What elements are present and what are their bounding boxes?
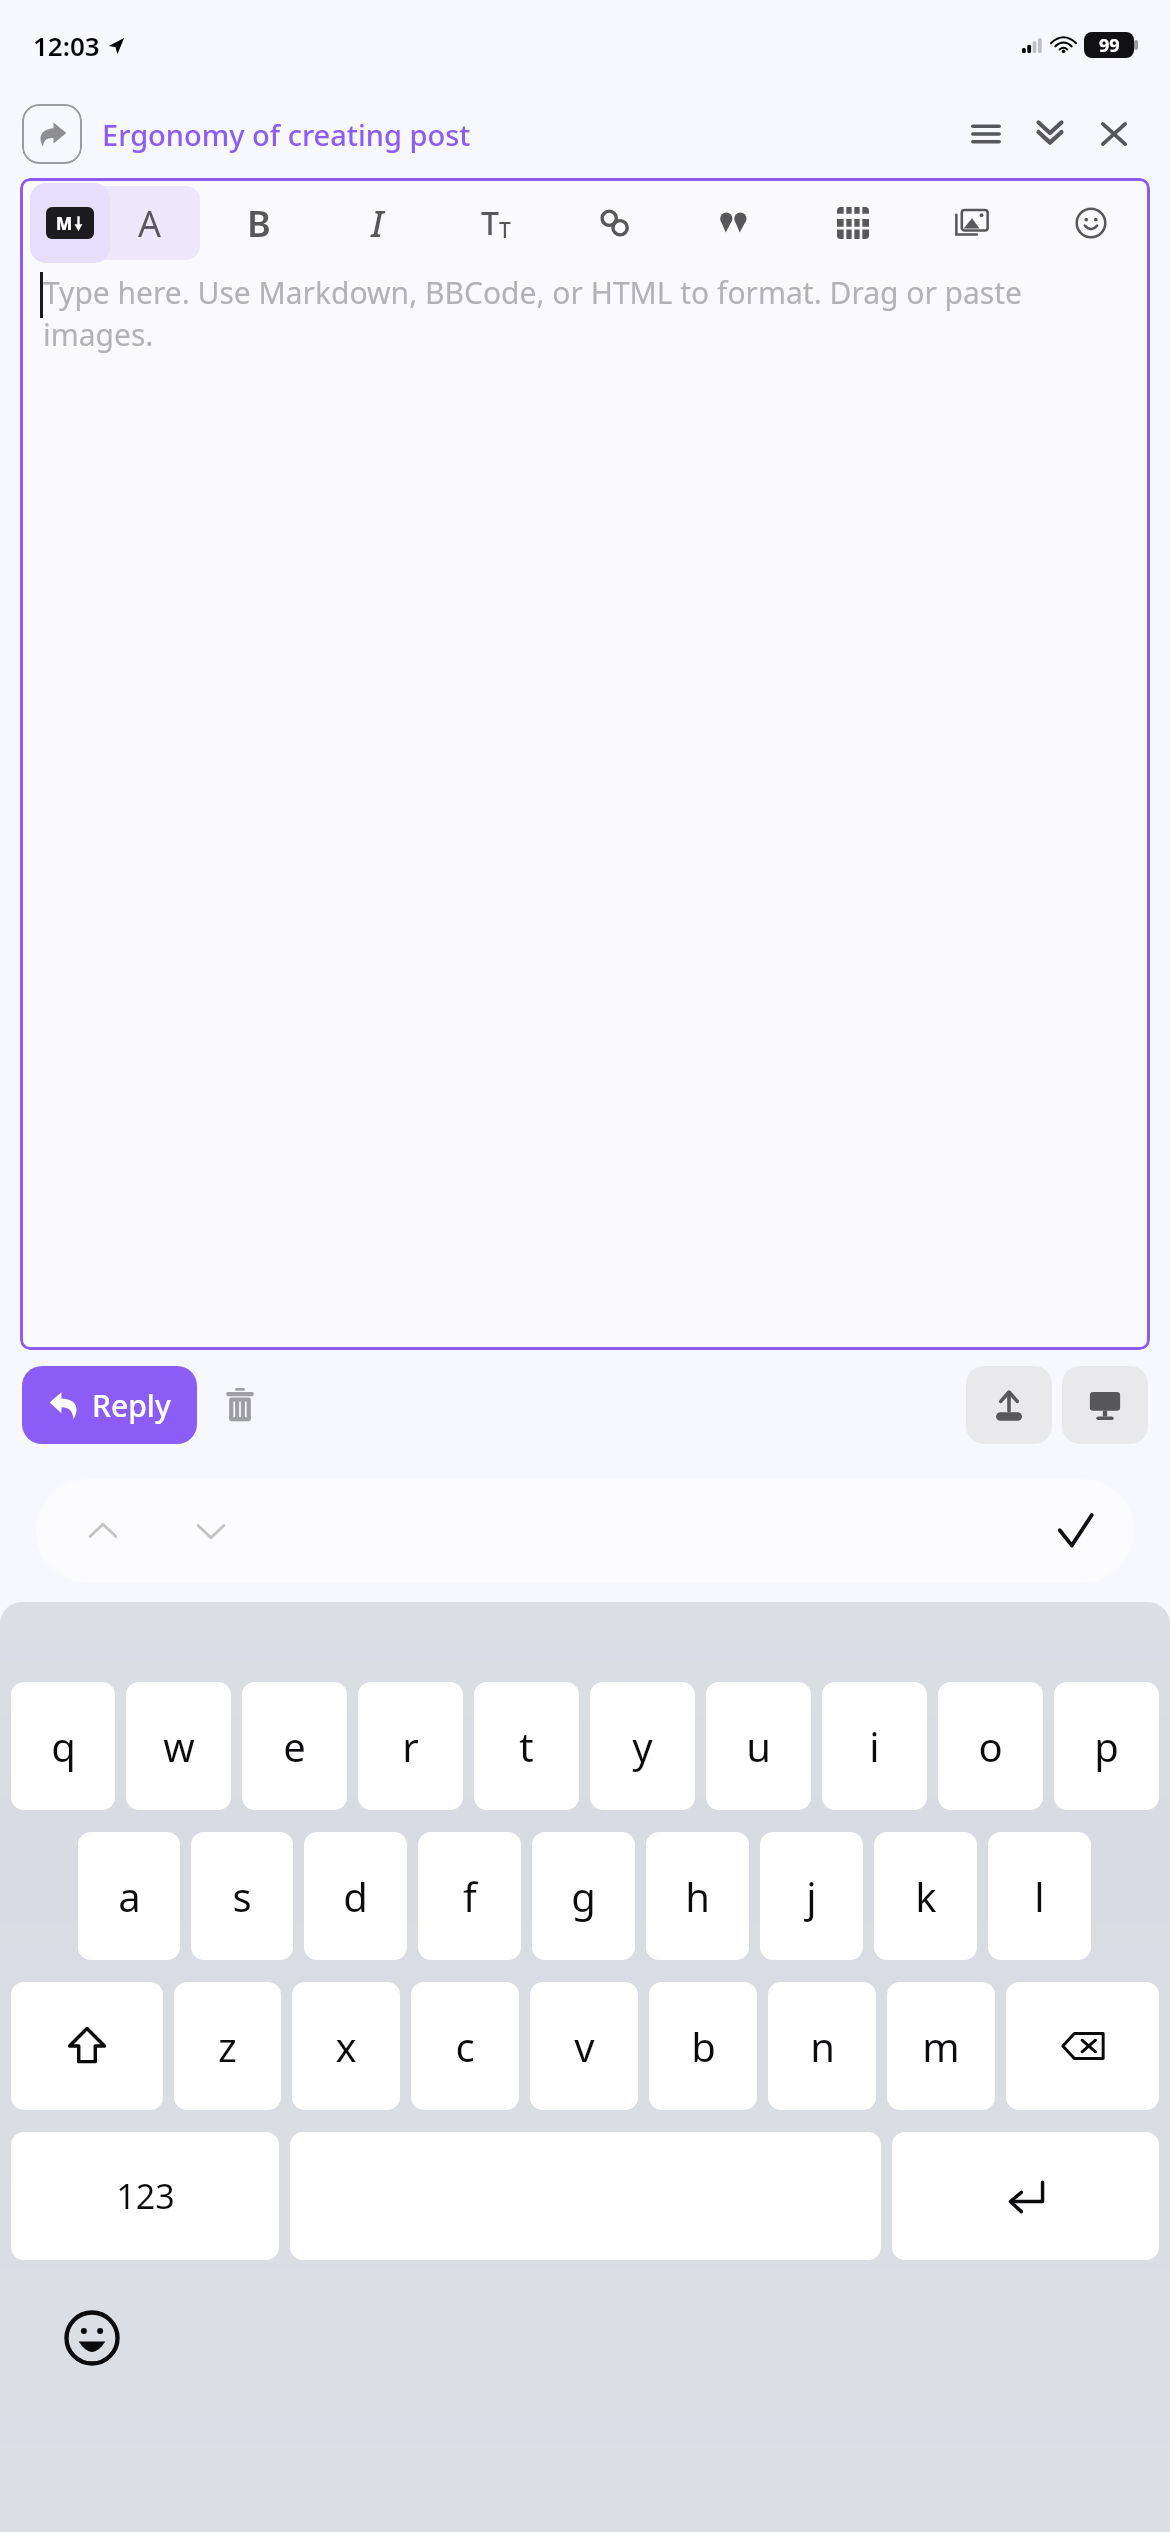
staticText: y bbox=[632, 1719, 653, 1773]
staticText: p bbox=[1094, 1719, 1119, 1773]
button[interactable]: Upload bbox=[966, 1366, 1052, 1444]
staticText: x bbox=[335, 2019, 357, 2073]
staticText: f bbox=[463, 1869, 477, 1923]
button[interactable]: k bbox=[874, 1832, 977, 1960]
button[interactable]: Close bbox=[1086, 106, 1142, 162]
staticText: h bbox=[685, 1869, 710, 1923]
button[interactable]: j bbox=[760, 1832, 863, 1960]
staticText: l bbox=[1034, 1869, 1045, 1923]
button[interactable]: p bbox=[1054, 1682, 1159, 1810]
staticText: 12:03 bbox=[33, 28, 100, 63]
staticText: w bbox=[163, 1719, 195, 1773]
staticText: T bbox=[499, 216, 511, 245]
button[interactable]: v bbox=[530, 1982, 638, 2110]
staticText: Reply bbox=[92, 1385, 171, 1426]
staticText: s bbox=[232, 1869, 252, 1923]
button[interactable]: 123 bbox=[11, 2132, 279, 2260]
staticText: q bbox=[51, 1719, 76, 1773]
staticText: k bbox=[915, 1869, 937, 1923]
button[interactable]: w bbox=[126, 1682, 231, 1810]
button[interactable]: d bbox=[304, 1832, 407, 1960]
button[interactable]: z bbox=[174, 1982, 281, 2110]
button[interactable]: Share bbox=[22, 104, 82, 164]
staticText: 123 bbox=[116, 2173, 175, 2219]
staticText: m bbox=[922, 2019, 960, 2073]
button[interactable]: Menu bbox=[958, 106, 1014, 162]
button[interactable]: Bold bbox=[200, 178, 318, 268]
staticText: v bbox=[574, 2019, 595, 2073]
staticText: B bbox=[247, 199, 271, 248]
button[interactable]: Done bbox=[1032, 1488, 1118, 1574]
staticText: a bbox=[118, 1869, 141, 1923]
button[interactable]: Italic bbox=[318, 178, 436, 268]
staticText: j bbox=[806, 1869, 817, 1923]
button[interactable]: Collapse bbox=[1022, 106, 1078, 162]
button[interactable]: Next field bbox=[168, 1488, 254, 1574]
button[interactable]: Shift bbox=[11, 1982, 163, 2110]
button[interactable]: g bbox=[532, 1832, 635, 1960]
button[interactable]: c bbox=[411, 1982, 519, 2110]
staticText: c bbox=[455, 2019, 475, 2073]
staticText: u bbox=[746, 1719, 771, 1773]
staticText: M bbox=[56, 212, 73, 235]
button[interactable]: o bbox=[938, 1682, 1043, 1810]
button[interactable]: l bbox=[988, 1832, 1091, 1960]
button[interactable]: Emoji bbox=[1031, 178, 1150, 268]
button[interactable]: Text size bbox=[436, 178, 555, 268]
button[interactable]: m bbox=[887, 1982, 995, 2110]
button[interactable]: Reply bbox=[22, 1366, 197, 1444]
staticText: T bbox=[481, 201, 499, 245]
button[interactable]: q bbox=[11, 1682, 115, 1810]
button[interactable]: Previous field bbox=[60, 1488, 146, 1574]
staticText: n bbox=[810, 2019, 835, 2073]
staticText: z bbox=[218, 2019, 237, 2073]
button[interactable]: Image bbox=[912, 178, 1031, 268]
staticText: i bbox=[869, 1719, 880, 1773]
button[interactable]: Table bbox=[793, 178, 912, 268]
button[interactable]: t bbox=[474, 1682, 579, 1810]
staticText: d bbox=[343, 1869, 368, 1923]
button[interactable]: i bbox=[822, 1682, 927, 1810]
button[interactable]: Return bbox=[892, 2132, 1159, 2260]
button[interactable]: y bbox=[590, 1682, 695, 1810]
staticText: t bbox=[519, 1719, 534, 1773]
button[interactable]: u bbox=[706, 1682, 811, 1810]
button[interactable]: Font bbox=[110, 183, 190, 263]
button[interactable]: Quote bbox=[674, 178, 793, 268]
staticText: b bbox=[691, 2019, 716, 2073]
button[interactable]: Delete bbox=[197, 1362, 283, 1448]
staticText: o bbox=[978, 1719, 1003, 1773]
staticText: e bbox=[283, 1719, 306, 1773]
button[interactable]: b bbox=[649, 1982, 757, 2110]
button[interactable]: Ergonomy of creating post bbox=[102, 115, 958, 154]
button[interactable]: n bbox=[768, 1982, 876, 2110]
staticText: r bbox=[402, 1719, 419, 1773]
button[interactable]: Link bbox=[555, 178, 674, 268]
staticText: Type here. Use Markdown, BBCode, or HTML… bbox=[43, 272, 1110, 355]
button[interactable]: r bbox=[358, 1682, 463, 1810]
button[interactable]: f bbox=[418, 1832, 521, 1960]
button[interactable]: Preview bbox=[1062, 1366, 1148, 1444]
staticText: g bbox=[571, 1869, 596, 1923]
button[interactable]: Emoji keyboard bbox=[52, 2298, 132, 2378]
button[interactable]: e bbox=[242, 1682, 347, 1810]
button[interactable]: a bbox=[78, 1832, 180, 1960]
button[interactable]: x bbox=[292, 1982, 400, 2110]
button[interactable]: Markdown bbox=[30, 183, 110, 263]
button[interactable]: Backspace bbox=[1006, 1982, 1159, 2110]
staticText: I bbox=[371, 199, 384, 248]
staticText: A bbox=[138, 199, 162, 248]
button[interactable]: h bbox=[646, 1832, 749, 1960]
staticText: 99 bbox=[1099, 33, 1120, 58]
button[interactable]: s bbox=[191, 1832, 293, 1960]
